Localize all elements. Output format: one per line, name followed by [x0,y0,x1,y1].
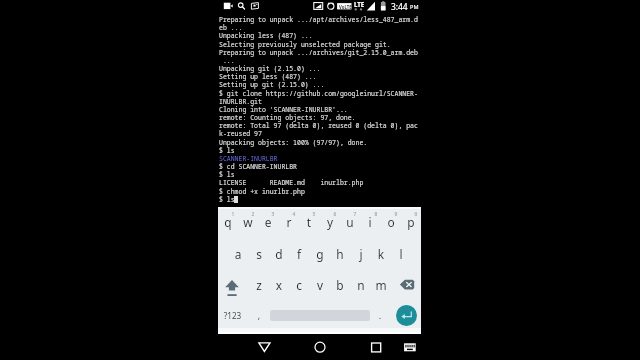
staticText: Preparing to unpack .../apt/archives/les… [219,15,418,24]
staticText: ... [219,56,235,65]
button[interactable]: Backspace [391,270,421,301]
button[interactable]: x [269,270,289,301]
button[interactable]: Back [249,334,279,360]
staticText: f [289,246,309,262]
staticText: u [340,214,360,230]
staticText: k-reused 97 [219,129,262,138]
staticText: g [310,246,330,262]
staticText: 0 [413,211,419,218]
button[interactable]: , [249,301,269,332]
button[interactable]: q [218,207,238,238]
staticText: remote: Counting objects: 97, done. [219,113,356,122]
button[interactable]: f [289,239,309,270]
button[interactable]: s [249,239,269,270]
staticText: p [401,214,421,230]
button[interactable]: n [351,270,371,301]
staticText: $ cd SCANNER-INURLBR [219,162,298,171]
button[interactable]: l [391,239,411,270]
button[interactable]: b [330,270,350,301]
button[interactable]: Enter [396,305,417,326]
button[interactable]: Recents [361,334,391,360]
staticText: $ chmod +x inurlbr.php [219,187,305,196]
staticText: $ git clone https://github.com/googleinu… [219,89,418,98]
staticText: LTE [354,0,365,8]
staticText: w [238,214,258,230]
staticText: PM [410,3,419,11]
staticText: h [330,246,350,262]
staticText: 3 [270,211,276,218]
button[interactable]: a [228,239,248,270]
button[interactable]: e [258,207,278,238]
button[interactable]: Switch keyboard [395,334,423,360]
staticText: $ ls [219,146,235,155]
staticText: q [218,214,238,230]
staticText: j [351,246,371,262]
staticText: b [330,277,350,293]
staticText: $ ls [219,195,235,204]
staticText: c [289,277,309,293]
staticText: VoLTE [339,4,352,10]
staticText: v [310,277,330,293]
staticText: 4 [291,211,297,218]
staticText: Unpacking git (2.15.0) ... [219,64,321,73]
button[interactable]: t [299,207,319,238]
staticText: Setting up less (487) ... [219,72,317,81]
staticText: 2 [250,211,256,218]
staticText: e [258,214,278,230]
staticText: 6 [332,211,338,218]
button[interactable]: z [249,270,269,301]
button[interactable]: g [310,239,330,270]
staticText: . [370,309,390,321]
staticText: 1 [230,211,236,218]
staticText: n [351,277,371,293]
button[interactable]: Shift [218,270,249,301]
button[interactable]: c [289,270,309,301]
staticText: t [299,214,319,230]
staticText: 3:44 [391,1,408,12]
staticText: 7 [352,211,358,218]
button[interactable]: y [320,207,340,238]
staticText: m [371,277,391,293]
staticText: k [371,246,391,262]
staticText: Cloning into 'SCANNER-INURLBR'... [219,105,348,114]
button[interactable]: k [371,239,391,270]
button[interactable]: p [401,207,421,238]
staticText: INURLBR.git [219,97,262,106]
button[interactable]: Home [305,334,335,360]
staticText: Preparing to unpack .../archives/git_2.1… [219,48,418,57]
staticText: z [249,277,269,293]
staticText: o [381,214,401,230]
button[interactable]: h [330,239,350,270]
staticText: LICENSE README.md inurlbr.php [219,178,364,187]
button[interactable]: i [360,207,380,238]
staticText: i [360,214,380,230]
button[interactable]: w [238,207,258,238]
staticText: 5 [311,211,317,218]
staticText: 9 [393,211,399,218]
staticText: s [249,246,269,262]
staticText: Unpacking objects: 100% (97/97), done. [219,138,368,147]
button[interactable]: v [310,270,330,301]
staticText: l [391,246,411,262]
staticText: ?123 [217,310,248,321]
button[interactable]: u [340,207,360,238]
staticText: , [249,309,269,321]
button[interactable]: m [371,270,391,301]
staticText: 8 [373,211,379,218]
staticText: remote: Total 97 (delta 0), reused 0 (de… [219,121,418,130]
button[interactable]: j [351,239,371,270]
button[interactable]: d [269,239,289,270]
staticText: r [279,214,299,230]
staticText: $ ls [219,170,235,179]
staticText: Unpacking less (487) ... [219,31,313,40]
button[interactable]: r [279,207,299,238]
staticText: Setting up git (2.15.0) ... [219,80,325,89]
staticText: eb ... [219,23,243,32]
button[interactable]: o [381,207,401,238]
button[interactable]: ?123 [218,301,249,332]
staticText: Selecting previously unselected package … [219,40,391,49]
staticText: x [269,277,289,293]
button[interactable]: . [370,301,390,332]
staticText: a [228,246,248,262]
